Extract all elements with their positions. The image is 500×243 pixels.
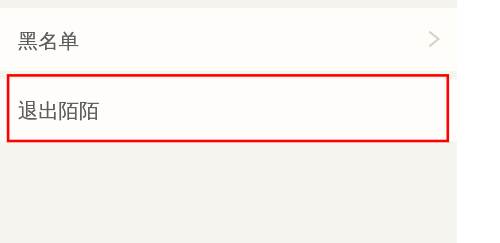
- staticText: 退出陌陌: [18, 98, 100, 124]
- button[interactable]: 退出陌陌: [0, 79, 457, 141]
- staticText: 黑名单: [18, 28, 79, 54]
- staticText: 退出陌陌: [18, 98, 100, 124]
- button[interactable]: 黑名单: [0, 8, 457, 71]
- staticText: 黑名单: [18, 28, 79, 54]
- other: 黑名单: [418, 30, 438, 50]
